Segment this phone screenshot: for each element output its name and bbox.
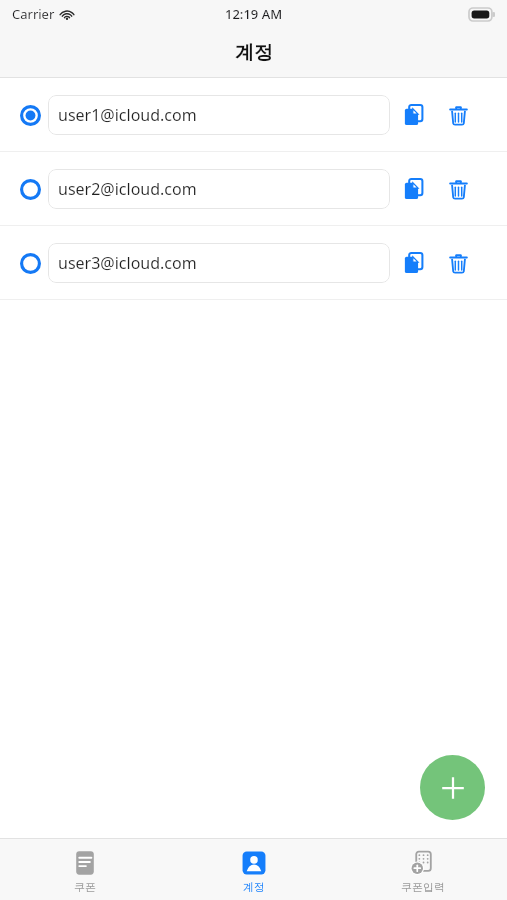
button[interactable]: Select user1@icloud.com bbox=[14, 99, 46, 131]
button[interactable]: Delete bbox=[442, 99, 474, 131]
button[interactable]: user1@icloud.com bbox=[48, 95, 390, 135]
staticText: 계정 bbox=[243, 880, 265, 894]
staticText: user3@icloud.com bbox=[58, 252, 197, 274]
button[interactable]: 계정 bbox=[169, 846, 338, 898]
button[interactable]: 쿠폰입력 bbox=[338, 846, 507, 898]
button[interactable]: 쿠폰 bbox=[0, 846, 169, 898]
button[interactable]: Delete bbox=[442, 173, 474, 205]
staticText: user1@icloud.com bbox=[58, 104, 197, 126]
button[interactable]: Copy bbox=[398, 173, 430, 205]
button[interactable]: Select user2@icloud.com bbox=[14, 173, 46, 205]
button[interactable]: user3@icloud.com bbox=[48, 243, 390, 283]
staticText: 계정 bbox=[235, 41, 273, 65]
staticText: Carrier bbox=[12, 5, 55, 23]
staticText: 쿠폰입력 bbox=[401, 880, 445, 894]
button[interactable]: Select user3@icloud.com bbox=[14, 247, 46, 279]
button[interactable]: Copy bbox=[398, 99, 430, 131]
staticText: 12:19 AM bbox=[225, 5, 283, 23]
staticText: 쿠폰 bbox=[74, 880, 96, 894]
button[interactable]: user2@icloud.com bbox=[48, 169, 390, 209]
button[interactable]: Delete bbox=[442, 247, 474, 279]
staticText: user2@icloud.com bbox=[58, 178, 197, 200]
button[interactable]: Add account bbox=[420, 755, 485, 820]
button[interactable]: Copy bbox=[398, 247, 430, 279]
